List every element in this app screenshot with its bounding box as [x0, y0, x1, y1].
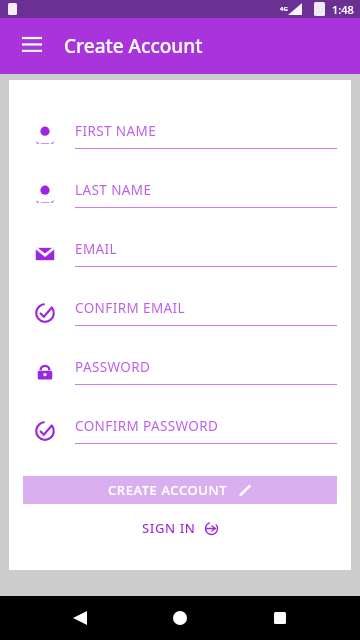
button[interactable]: LAST NAME: [9, 165, 351, 224]
button[interactable]: PASSWORD: [9, 342, 351, 401]
button[interactable]: Recent apps: [260, 598, 300, 638]
button[interactable]: SIGN IN: [128, 514, 233, 542]
button[interactable]: Open navigation menu: [12, 26, 52, 66]
button[interactable]: CONFIRM EMAIL: [9, 283, 351, 342]
button[interactable]: EMAIL: [9, 224, 351, 283]
staticText: Create Account: [64, 33, 203, 59]
staticText: EMAIL: [75, 240, 118, 258]
staticText: CONFIRM PASSWORD: [75, 417, 219, 435]
button[interactable]: FIRST NAME: [9, 106, 351, 165]
button[interactable]: CONFIRM PASSWORD: [9, 401, 351, 460]
staticText: LAST NAME: [75, 181, 152, 199]
button[interactable]: Back: [60, 598, 100, 638]
staticText: PASSWORD: [75, 358, 151, 376]
button[interactable]: Home: [160, 598, 200, 638]
staticText: 4G: [280, 5, 288, 13]
button[interactable]: CREATE ACCOUNT: [23, 476, 337, 504]
button[interactable]: [23, 22, 337, 46]
staticText: CONFIRM EMAIL: [75, 299, 186, 317]
staticText: 1:48: [332, 2, 354, 17]
staticText: FIRST NAME: [75, 122, 157, 140]
staticText: CREATE ACCOUNT: [108, 481, 228, 499]
staticText: SIGN IN: [142, 519, 196, 537]
